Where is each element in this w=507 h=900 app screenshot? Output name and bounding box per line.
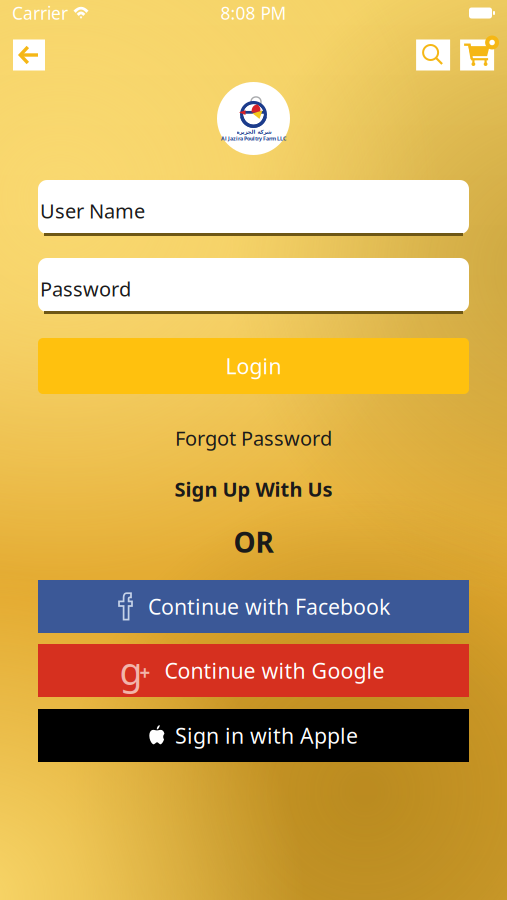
button[interactable]: Sign in with Apple: [38, 709, 469, 762]
staticText: Forgot Password: [175, 425, 332, 451]
button[interactable]: Forgot Password: [38, 420, 469, 456]
staticText: Carrier: [12, 1, 68, 24]
button[interactable]: Search: [416, 39, 450, 70]
staticText: Al Jazira Poultry Farm LLC: [221, 135, 286, 142]
staticText: Continue with Facebook: [148, 592, 390, 621]
staticText: g: [119, 646, 142, 695]
staticText: Sign in with Apple: [175, 721, 358, 750]
button[interactable]: Continue with Facebook: [38, 580, 469, 633]
staticText: User Name: [40, 197, 145, 224]
staticText: 8:08 PM: [220, 1, 286, 24]
staticText: شركة الجزيرة: [236, 129, 271, 135]
staticText: Sign Up With Us: [174, 476, 332, 502]
staticText: Password: [40, 275, 131, 302]
button[interactable]: Sign Up With Us: [38, 471, 469, 507]
button[interactable]: Login: [38, 338, 469, 394]
button[interactable]: g: [38, 644, 469, 697]
staticText: OR: [233, 523, 273, 561]
button[interactable]: Back: [13, 39, 45, 70]
staticText: Continue with Google: [164, 656, 384, 685]
staticText: +: [139, 660, 150, 685]
staticText: Login: [225, 352, 281, 380]
button[interactable]: Cart: [458, 39, 497, 70]
